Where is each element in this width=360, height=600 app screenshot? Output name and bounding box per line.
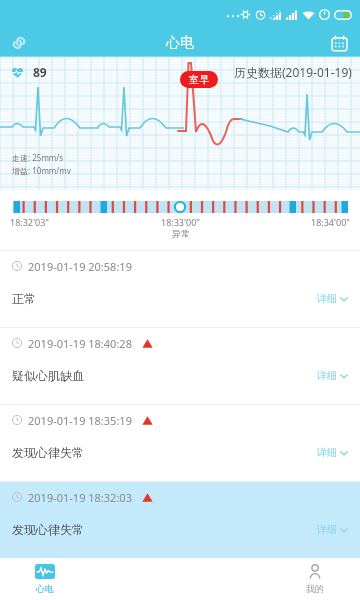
button[interactable]: 2019-01-19 20:58:19: [0, 250, 360, 327]
button[interactable]: 2019-01-19 18:35:19: [0, 404, 360, 481]
staticText: 发现心律失常: [12, 445, 84, 460]
staticText: 89: [33, 64, 47, 80]
staticText: 心电: [166, 34, 194, 52]
staticText: 发现心律失常: [12, 522, 84, 537]
staticText: 2019-01-19 18:40:28: [28, 336, 132, 351]
staticText: 2019-01-19 20:58:19: [28, 259, 132, 274]
staticText: 历史数据(2019-01-19): [234, 64, 352, 80]
button[interactable]: Connect device: [6, 30, 32, 56]
staticText: 走速: 25mm/s: [12, 152, 64, 163]
staticText: 正常: [12, 291, 36, 306]
button[interactable]: 我的: [270, 558, 360, 600]
staticText: 心电: [36, 583, 54, 594]
button[interactable]: 2019-01-19 18:32:03: [0, 481, 360, 558]
staticText: 详细: [317, 369, 337, 382]
staticText: 异常: [172, 228, 190, 239]
staticText: 详细: [317, 523, 337, 536]
staticText: 详细: [317, 446, 337, 459]
staticText: 我的: [306, 583, 324, 594]
staticText: 室早: [189, 73, 209, 86]
button[interactable]: 心电: [0, 558, 90, 600]
staticText: 2019-01-19 18:32:03: [28, 490, 132, 505]
staticText: 疑似心肌缺血: [12, 368, 84, 383]
staticText: 18:34'00": [311, 216, 350, 228]
button[interactable]: Calendar: [326, 30, 352, 56]
staticText: 18:32'03": [10, 216, 49, 228]
staticText: 详细: [317, 292, 337, 305]
staticText: 2019-01-19 18:35:19: [28, 413, 132, 428]
staticText: 增益: 10mm/mv: [12, 165, 71, 176]
staticText: 18:33'00": [161, 216, 200, 228]
button[interactable]: 2019-01-19 18:40:28: [0, 327, 360, 404]
